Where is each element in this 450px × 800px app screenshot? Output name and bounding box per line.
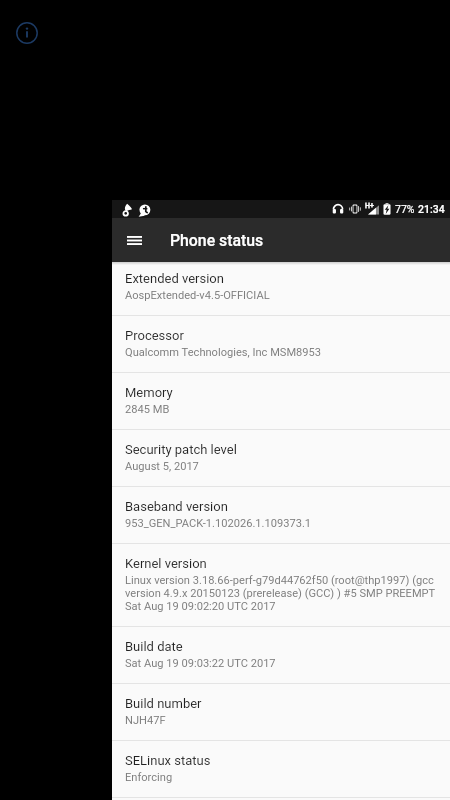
staticText: Phone status xyxy=(170,231,264,250)
staticText: SELinux status xyxy=(125,753,211,768)
button[interactable]: Extended version xyxy=(112,262,450,315)
button[interactable]: Navigation menu xyxy=(112,218,156,262)
staticText: August 5, 2017 xyxy=(125,460,199,473)
button[interactable]: SELinux status xyxy=(112,741,450,797)
button[interactable]: Processor xyxy=(112,316,450,372)
staticText: 2845 MB xyxy=(125,403,170,416)
staticText: AospExtended-v4.5-OFFICIAL xyxy=(125,289,270,302)
staticText: Build number xyxy=(125,696,202,711)
staticText: 21:34 xyxy=(418,203,445,215)
button[interactable]: Build date xyxy=(112,627,450,683)
staticText: 953_GEN_PACK-1.102026.1.109373.1 xyxy=(125,517,312,530)
staticText: Memory xyxy=(125,385,173,400)
staticText: Qualcomm Technologies, Inc MSM8953 xyxy=(125,346,322,359)
button[interactable]: Memory xyxy=(112,373,450,429)
staticText: Enforcing xyxy=(125,771,173,784)
button[interactable]: Security patch level xyxy=(112,430,450,486)
staticText: NJH47F xyxy=(125,714,166,727)
staticText: Processor xyxy=(125,328,184,343)
staticText: Sat Aug 19 09:03:22 UTC 2017 xyxy=(125,657,276,670)
staticText: Extended version xyxy=(125,271,224,286)
button[interactable]: Baseband version xyxy=(112,487,450,543)
staticText: Build date xyxy=(125,639,183,654)
staticText: Security patch level xyxy=(125,442,237,457)
staticText: Kernel version xyxy=(125,556,207,571)
button[interactable]: Kernel version xyxy=(112,544,450,626)
staticText: Baseband version xyxy=(125,499,228,514)
button[interactable]: Info xyxy=(16,22,38,44)
button[interactable]: Build number xyxy=(112,684,450,740)
staticText: 77% xyxy=(395,203,415,215)
staticText: Linux version 3.18.66-perf-g79d44762f50 … xyxy=(125,574,436,613)
staticText: H+ xyxy=(365,202,374,210)
